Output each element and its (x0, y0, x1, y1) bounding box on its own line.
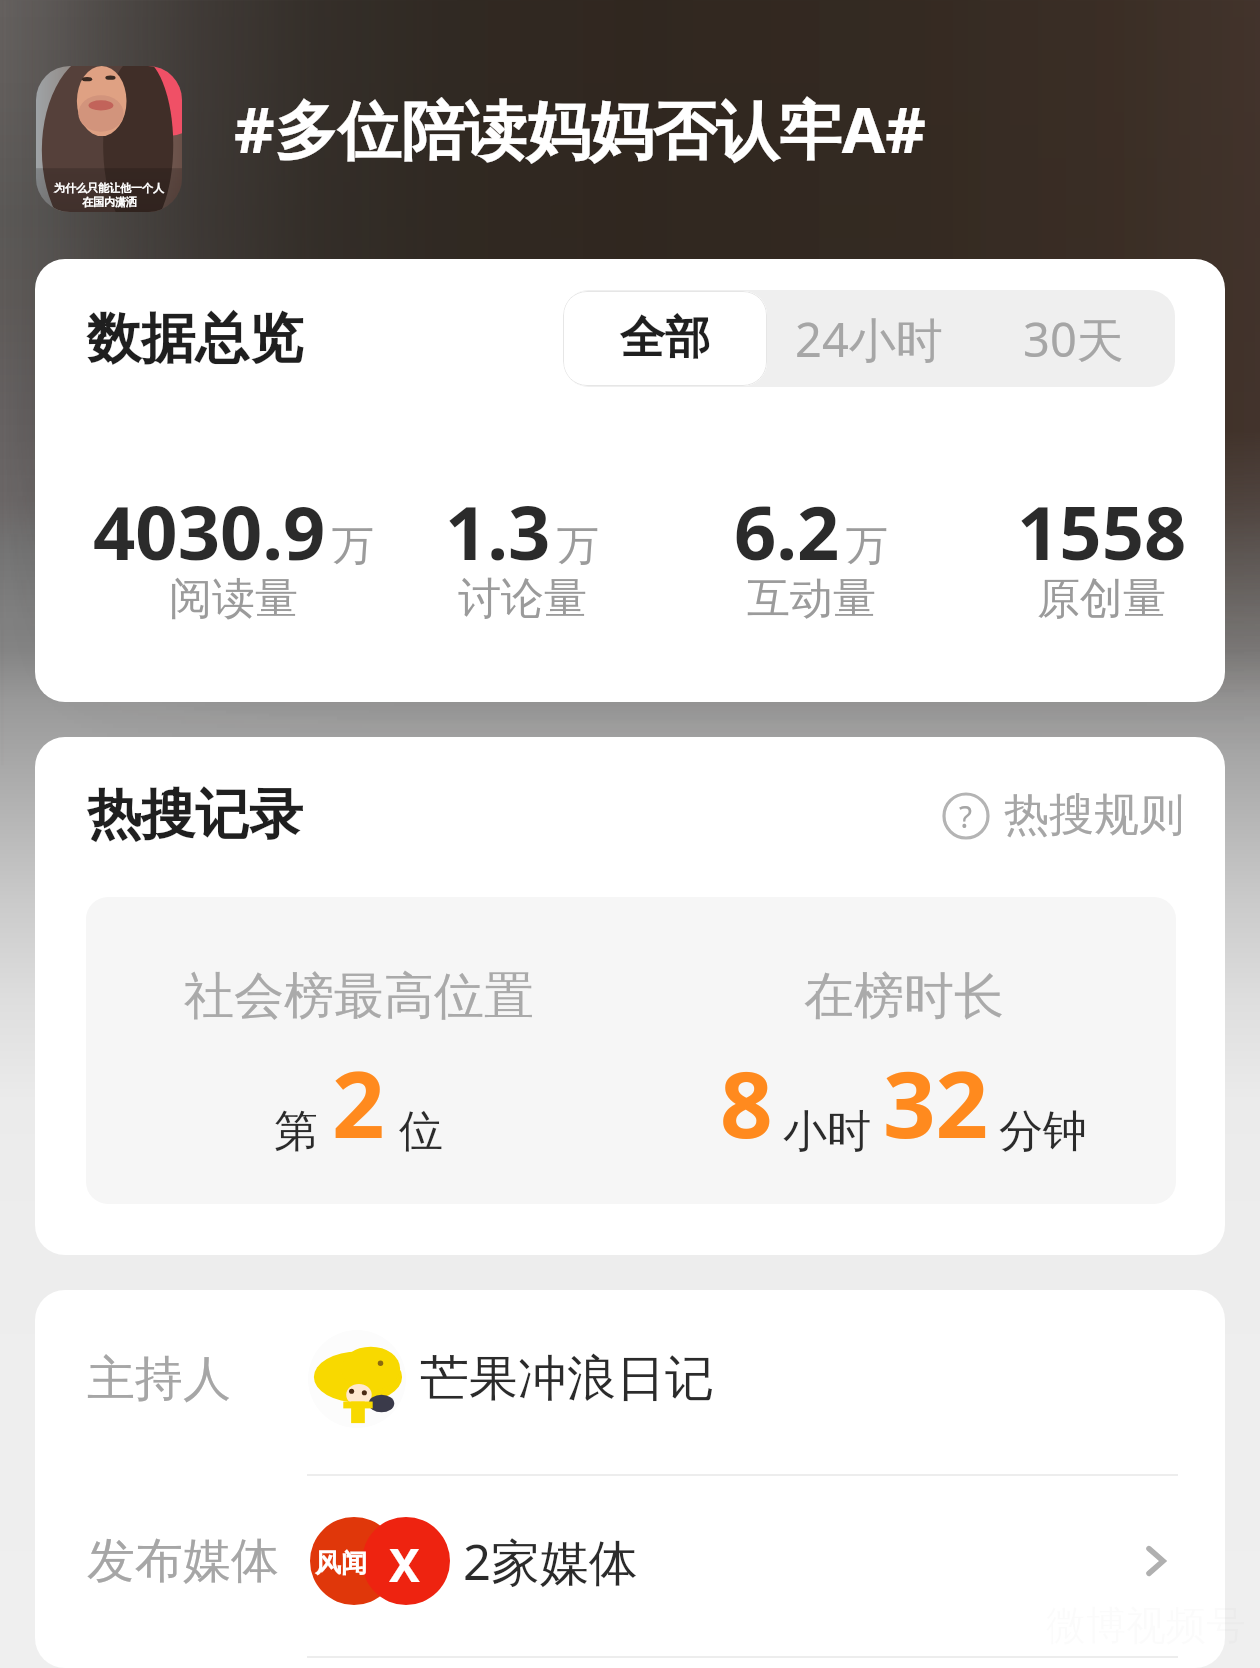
staticText: 在榜时长 (804, 965, 1004, 1028)
staticText: 2 (332, 1040, 385, 1165)
staticText: 阅读量 (169, 572, 298, 626)
staticText: X (389, 1533, 420, 1596)
staticText: 微博视频号 (1046, 1600, 1246, 1650)
staticText: 原创量 (1037, 572, 1166, 626)
staticText: 为什么只能让他一个人 (54, 181, 164, 195)
staticText: 风闻 (315, 1547, 367, 1580)
staticText: 社会榜最高位置 (184, 965, 534, 1028)
staticText: 发布媒体 (87, 1531, 279, 1591)
staticText: 2家媒体 (463, 1528, 639, 1595)
staticText: 位 (399, 1104, 443, 1159)
staticText: 1558 (1017, 481, 1187, 582)
staticText: 分钟 (999, 1104, 1087, 1159)
staticText: 1.3 (445, 481, 551, 582)
staticText: 数据总览 (87, 305, 303, 373)
staticText: 在国内潇洒 (82, 195, 137, 209)
staticText: 30天 (1023, 307, 1124, 371)
staticText: 万 (557, 520, 599, 573)
staticText: 热搜记录 (87, 781, 303, 849)
staticText: 讨论量 (458, 572, 587, 626)
button[interactable]: 全部 (563, 290, 767, 387)
staticText: 32 (883, 1040, 989, 1165)
staticText: 4030.9 (93, 481, 326, 582)
other: More media (1134, 1539, 1178, 1583)
staticText: 万 (332, 520, 374, 573)
staticText: 万 (846, 520, 888, 573)
staticText: 24小时 (795, 307, 943, 371)
staticText: 8 (720, 1040, 773, 1165)
staticText: 芒果冲浪日记 (420, 1348, 714, 1410)
staticText: ? (959, 796, 973, 837)
staticText: 6.2 (734, 481, 840, 582)
staticText: 互动量 (747, 572, 876, 626)
button[interactable]: 30天 (971, 290, 1175, 387)
button[interactable]: 发布媒体 (35, 1476, 1225, 1656)
staticText: 热搜规则 (1004, 787, 1184, 844)
button[interactable]: Topic video (36, 66, 182, 212)
button[interactable]: ? (942, 787, 1184, 844)
staticText: 小时 (783, 1104, 871, 1159)
staticText: 全部 (620, 310, 710, 367)
button[interactable]: 24小时 (767, 290, 971, 387)
staticText: 第 (274, 1104, 318, 1159)
staticText: #多位陪读妈妈否认牢A# (234, 86, 926, 172)
staticText: 主持人 (87, 1349, 231, 1409)
button[interactable]: 主持人 (35, 1290, 1225, 1474)
